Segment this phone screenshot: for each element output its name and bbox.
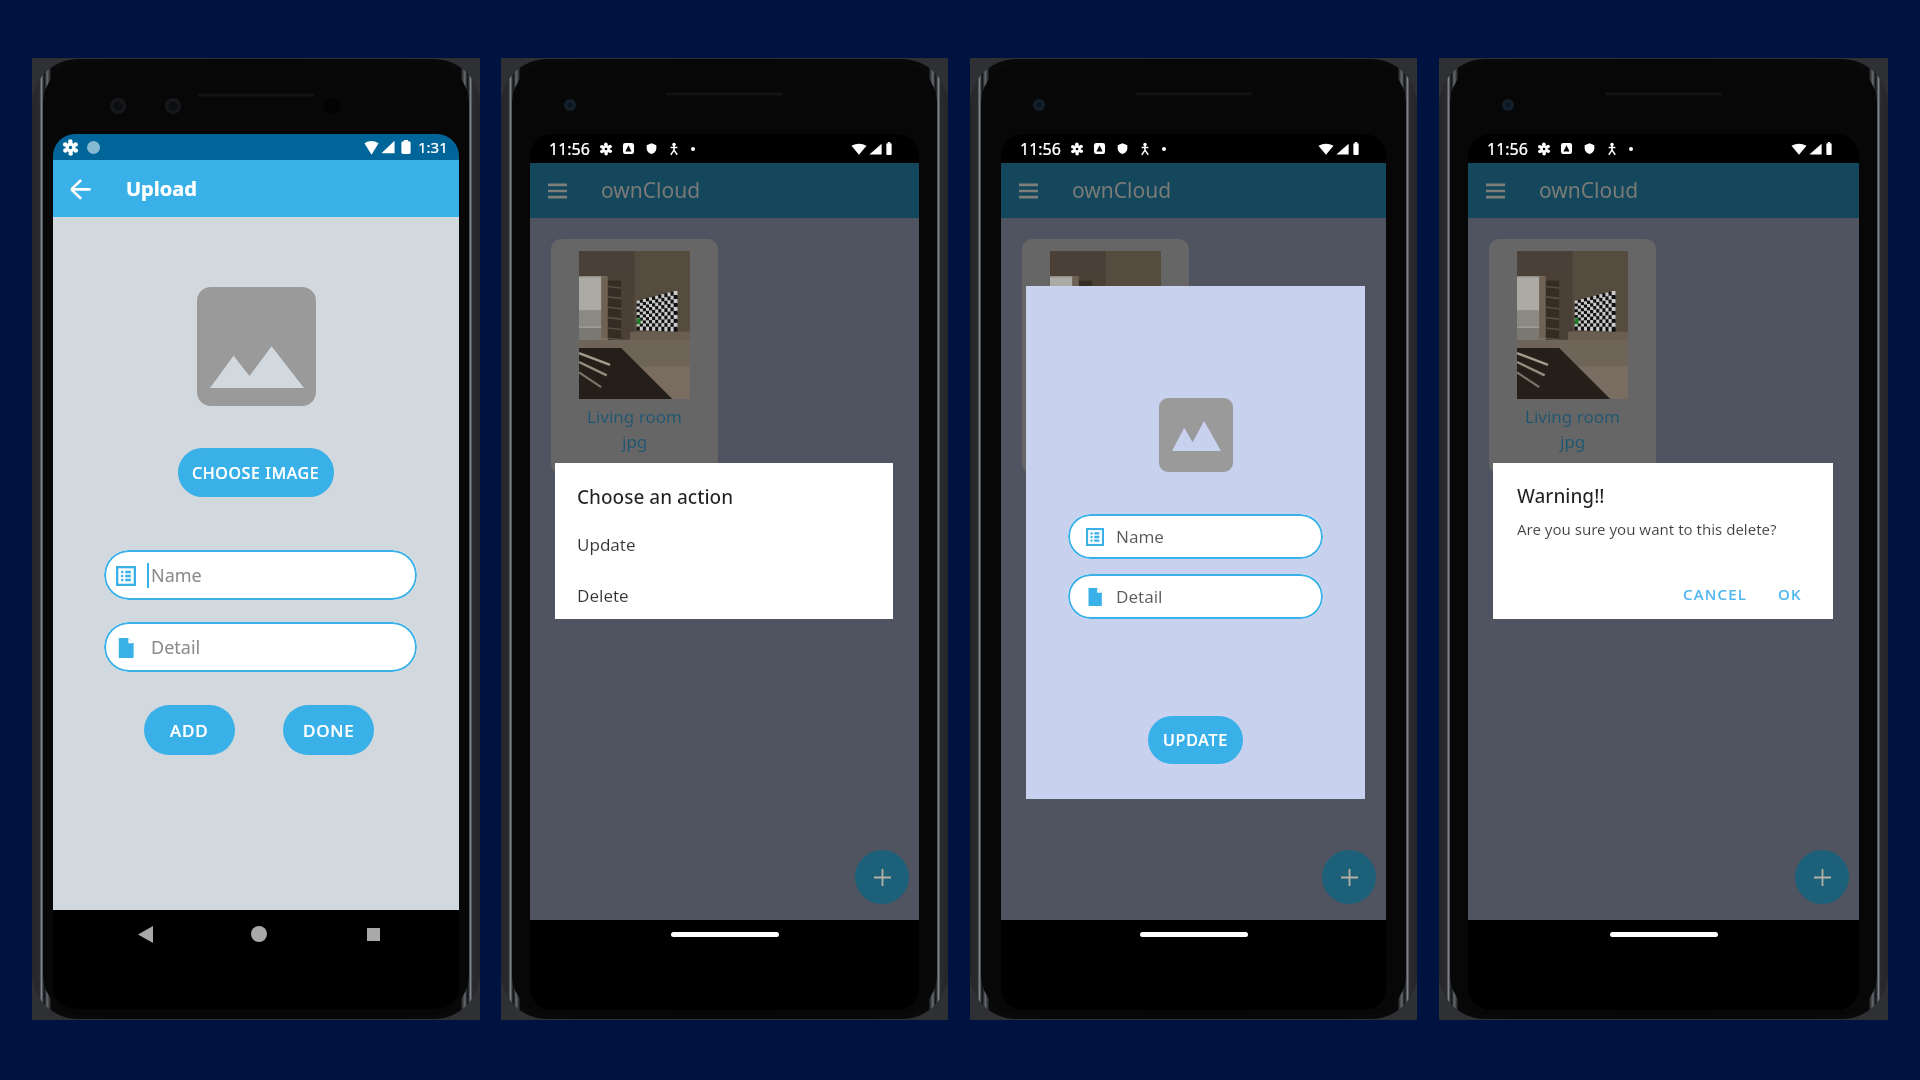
button[interactable]: Living room [551,239,718,474]
staticText: jpg [622,430,648,453]
button[interactable]: Menu [1468,163,1523,218]
button[interactable]: Detail [104,622,417,672]
button[interactable]: Name [1068,514,1323,559]
button[interactable]: Add [1322,850,1376,904]
staticText: DONE [303,719,355,742]
staticText: UPDATE [1163,729,1229,751]
button[interactable]: Living room [1489,239,1656,474]
staticText: Living room [1525,405,1620,428]
button[interactable]: Name [104,550,417,600]
button[interactable]: Home [235,910,283,958]
staticText: Choose an action [577,484,734,510]
staticText: 11:56 [549,138,590,160]
button[interactable]: OK [1770,578,1810,610]
button[interactable]: Living room [1022,239,1189,474]
button[interactable]: UPDATE [1148,716,1243,764]
staticText: 11:56 [1487,138,1528,160]
button[interactable]: ADD [144,705,235,755]
button[interactable]: DONE [283,705,374,755]
staticText: 1:31 [418,137,448,157]
button[interactable]: Delete [577,584,629,607]
staticText: Living room [587,405,682,428]
button[interactable]: Menu [530,163,585,218]
staticText: Name [151,563,202,588]
staticText: Name [1116,525,1164,548]
staticText: ownCloud [1072,176,1172,205]
button[interactable]: Add [1795,850,1849,904]
staticText: 11:56 [1020,138,1061,160]
staticText: Warning!! [1517,483,1605,509]
button[interactable]: Detail [1068,574,1323,619]
button[interactable]: Back [121,910,169,958]
staticText: OK [1778,584,1802,604]
staticText: Upload [126,175,197,202]
staticText: Detail [151,635,201,660]
button[interactable]: Menu [1001,163,1056,218]
staticText: Are you sure you want to this delete? [1517,519,1777,539]
staticText: ownCloud [601,176,701,205]
staticText: CHOOSE IMAGE [192,462,320,484]
staticText: CANCEL [1683,584,1748,604]
button[interactable]: CANCEL [1675,578,1756,610]
staticText: Detail [1116,585,1163,608]
staticText: jpg [1560,430,1586,453]
button[interactable]: CHOOSE IMAGE [178,448,334,497]
button[interactable]: Recents [349,910,397,958]
button[interactable]: Update [577,533,636,556]
button[interactable]: Back [53,160,108,217]
staticText: ownCloud [1539,176,1639,205]
staticText: ADD [170,719,209,742]
button[interactable]: Add [855,850,909,904]
